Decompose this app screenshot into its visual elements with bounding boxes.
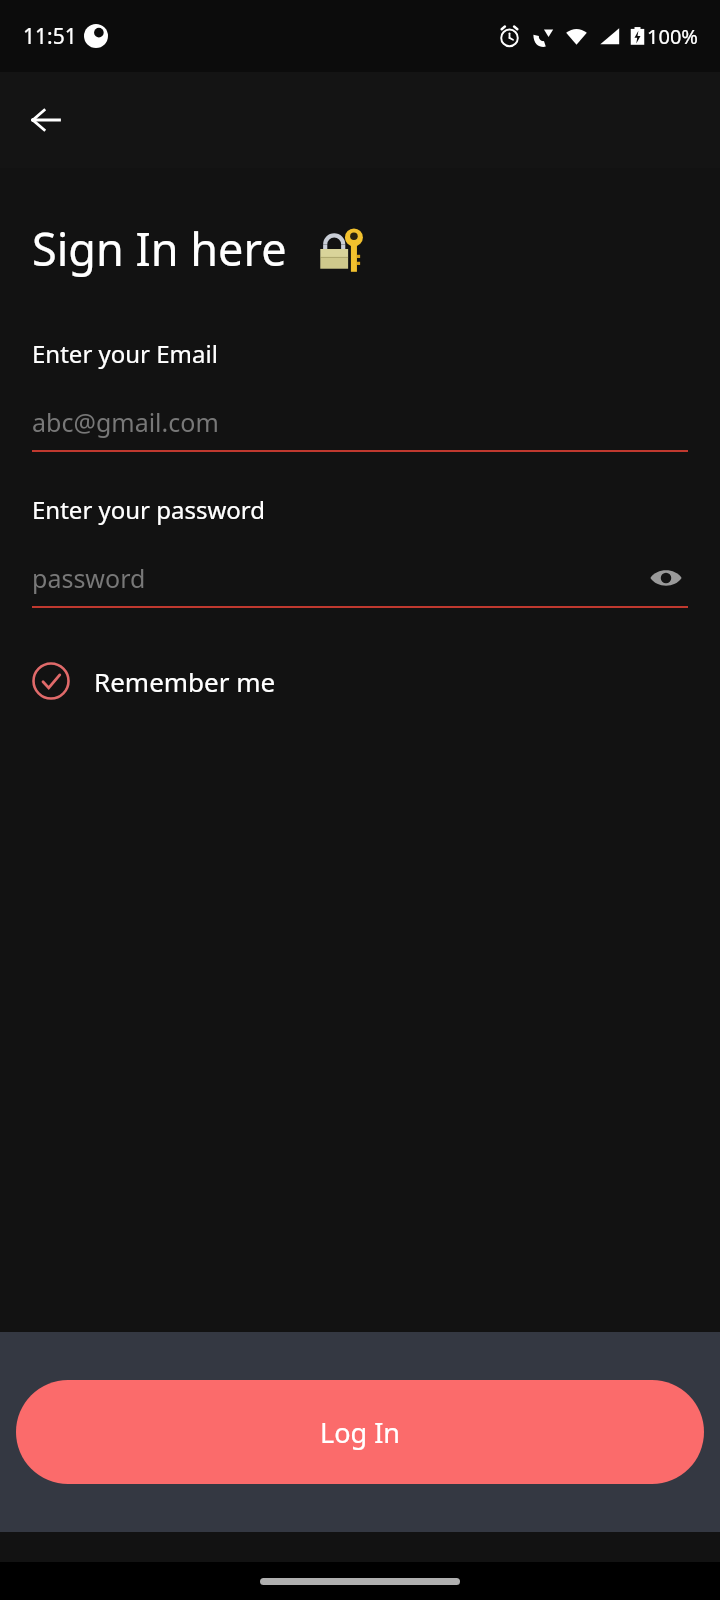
- staticText: Enter your password: [32, 493, 266, 526]
- staticText: Sign In here: [32, 218, 287, 279]
- button[interactable]: Show password: [644, 556, 688, 600]
- button[interactable]: abc@gmail.com: [32, 397, 688, 447]
- staticText: password: [32, 561, 146, 595]
- staticText: Remember me: [94, 664, 276, 699]
- button[interactable]: password: [32, 553, 688, 603]
- button[interactable]: Log In: [16, 1380, 704, 1484]
- button[interactable]: Remember me: [32, 662, 720, 700]
- staticText: 100%: [647, 23, 698, 50]
- staticText: Enter your Email: [32, 337, 218, 370]
- staticText: 11:51: [23, 22, 77, 51]
- staticText: abc@gmail.com: [32, 405, 219, 439]
- staticText: Log In: [320, 1414, 400, 1451]
- button[interactable]: Back: [14, 88, 78, 152]
